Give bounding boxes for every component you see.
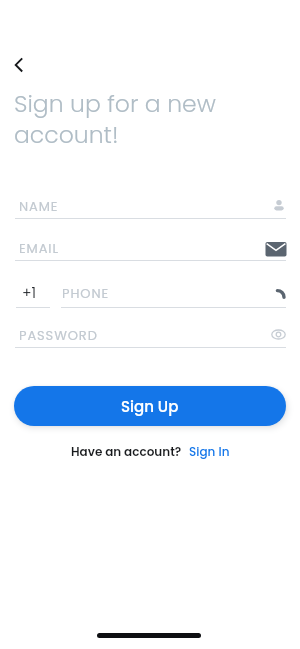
staticText: Sign up for a new account! xyxy=(14,87,216,152)
staticText: +1 xyxy=(22,283,37,303)
button[interactable]: NAME xyxy=(14,194,286,220)
button[interactable]: PASSWORD xyxy=(14,323,286,349)
button[interactable]: Sign Up xyxy=(14,386,286,426)
staticText: NAME xyxy=(19,197,59,215)
staticText: Sign Up xyxy=(121,396,179,417)
staticText: PASSWORD xyxy=(19,326,98,344)
button[interactable]: +1 xyxy=(14,280,286,308)
button[interactable]: EMAIL xyxy=(14,236,286,262)
staticText: Have an account? xyxy=(71,443,182,460)
staticText: EMAIL xyxy=(19,239,59,257)
button[interactable]: Sign In xyxy=(189,443,230,460)
button[interactable] xyxy=(6,51,32,77)
staticText: PHONE xyxy=(62,284,110,302)
